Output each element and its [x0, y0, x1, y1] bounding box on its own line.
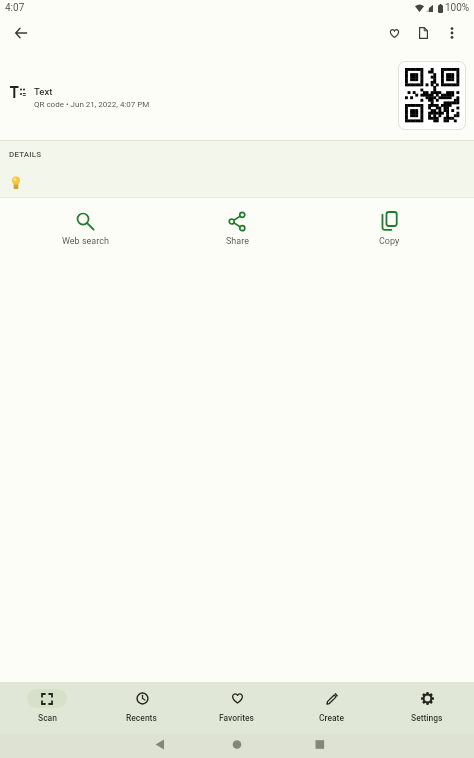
button[interactable]: Create	[284, 682, 379, 734]
button[interactable]: Scan	[0, 682, 94, 734]
staticText: Copy	[379, 236, 400, 247]
staticText: Favorites	[219, 713, 255, 723]
button[interactable]	[399, 62, 465, 129]
button[interactable]: Copy	[313, 211, 465, 247]
staticText: QR code • Jun 21, 2022, 4:07 PM	[34, 100, 150, 109]
staticText: Web search	[62, 236, 109, 247]
staticText: 100%	[445, 2, 470, 14]
button[interactable]: Share	[161, 211, 313, 247]
button[interactable]	[419, 27, 428, 39]
button[interactable]: Favorites	[189, 682, 284, 734]
button[interactable]: Recents	[94, 682, 189, 734]
staticText: DETAILS	[9, 150, 42, 159]
staticText: Create	[319, 713, 345, 723]
staticText: Recents	[126, 713, 157, 723]
staticText: Text	[34, 86, 53, 97]
staticText: Share	[226, 236, 249, 247]
button[interactable]: Web search	[9, 211, 161, 247]
button[interactable]: Settings	[379, 682, 474, 734]
button[interactable]	[15, 27, 27, 39]
button[interactable]	[450, 27, 454, 39]
staticText: Scan	[38, 713, 57, 723]
button[interactable]	[389, 28, 400, 39]
staticText: Settings	[411, 713, 443, 723]
staticText: 4:07	[5, 2, 25, 14]
